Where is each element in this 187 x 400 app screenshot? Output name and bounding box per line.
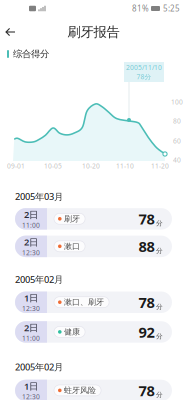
staticText: 100 xyxy=(171,98,183,106)
button[interactable]: 2日 xyxy=(15,208,172,230)
staticText: 分 xyxy=(156,219,163,227)
staticText: 2005年03月 xyxy=(15,190,63,203)
staticText: 10-20 xyxy=(82,162,100,170)
staticText: 09-01 xyxy=(7,162,25,170)
button[interactable]: Back xyxy=(0,21,21,42)
staticText: 漱口、刷牙 xyxy=(64,297,104,307)
staticText: 1日 xyxy=(24,380,38,392)
staticText: 1日 xyxy=(24,292,38,304)
staticText: 11-10 xyxy=(116,162,134,170)
button[interactable]: 2日 xyxy=(15,236,172,257)
staticText: 综合得分 xyxy=(13,48,49,60)
staticText: 11:00 xyxy=(22,334,40,343)
staticText: 2日 xyxy=(24,236,38,248)
button[interactable]: 1日 xyxy=(15,291,172,313)
staticText: 78 xyxy=(138,381,154,400)
staticText: 5:25 xyxy=(163,3,180,14)
staticText: 健康 xyxy=(64,327,80,337)
staticText: 刷牙报告 xyxy=(67,24,119,40)
staticText: 81% xyxy=(132,3,149,14)
staticText: 78分 xyxy=(136,72,151,81)
staticText: 60 xyxy=(173,137,181,145)
staticText: 40 xyxy=(173,156,181,164)
staticText: 80 xyxy=(173,117,181,125)
staticText: 蛀牙风险 xyxy=(64,385,96,395)
staticText: 刷牙 xyxy=(64,214,80,224)
staticText: 92 xyxy=(138,322,154,342)
staticText: 78 xyxy=(138,209,154,229)
staticText: 12:30 xyxy=(22,304,40,313)
staticText: 10-05 xyxy=(44,162,62,170)
staticText: 2005年02月 xyxy=(15,361,63,373)
staticText: 2005/11/10 xyxy=(126,63,162,72)
staticText: 2日 xyxy=(24,321,38,334)
staticText: 11-20 xyxy=(151,162,169,170)
staticText: 2日 xyxy=(24,208,38,221)
staticText: 78 xyxy=(138,292,154,312)
staticText: 分 xyxy=(156,332,163,340)
staticText: 分 xyxy=(156,391,163,399)
staticText: 12:30 xyxy=(22,248,40,257)
staticText: 2005年02月 xyxy=(15,273,63,285)
staticText: 11:00 xyxy=(22,221,40,229)
staticText: 漱口 xyxy=(64,241,80,251)
staticText: 分 xyxy=(156,303,163,311)
staticText: 12:30 xyxy=(22,392,40,400)
staticText: 分 xyxy=(156,247,163,255)
button[interactable]: 1日 xyxy=(15,380,172,400)
button[interactable]: 2日 xyxy=(15,321,172,343)
staticText: 88 xyxy=(138,237,154,256)
